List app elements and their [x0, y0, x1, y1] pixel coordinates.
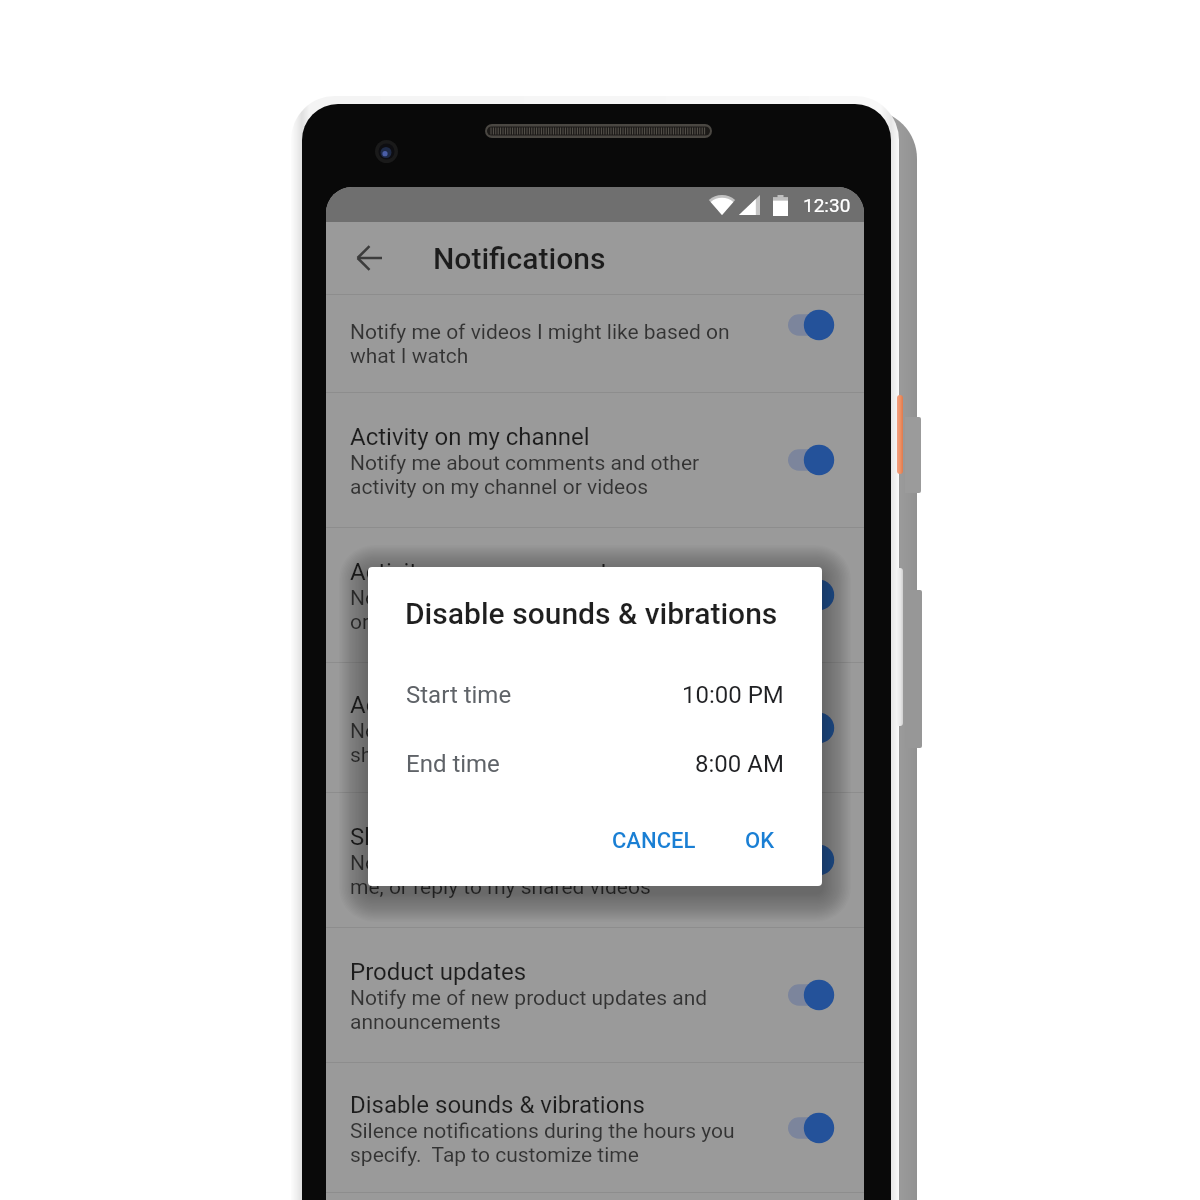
button[interactable]: Activity on my comments	[326, 528, 864, 662]
staticText: Activity on my comments	[350, 556, 621, 586]
staticText: Notify me about replies to my comments o…	[350, 586, 730, 634]
staticText: OK	[745, 828, 775, 854]
staticText: CANCEL	[612, 828, 696, 854]
button[interactable]: Notify me of videos I might like based o…	[326, 295, 864, 392]
button[interactable]: Toggle	[788, 575, 840, 615]
button[interactable]: Product updates	[326, 928, 864, 1062]
button[interactable]: Start time	[368, 670, 822, 720]
button[interactable]: OK	[735, 820, 785, 862]
staticText: Disable sounds & vibrations	[405, 596, 778, 631]
staticText: Notify me of videos I might like based o…	[350, 320, 730, 368]
staticText: Notifications	[433, 241, 606, 276]
staticText: Notify me when people share videos with …	[350, 851, 733, 899]
button[interactable]: Toggle	[788, 840, 840, 880]
button[interactable]: Toggle	[788, 1108, 840, 1148]
button[interactable]: CANCEL	[602, 820, 706, 862]
button[interactable]: Toggle	[788, 440, 840, 480]
button[interactable]: End time	[368, 739, 822, 789]
staticText: Shared videos	[350, 821, 501, 851]
staticText: Activity on my channel	[350, 421, 590, 451]
staticText: Start time	[406, 681, 512, 709]
staticText: End time	[406, 750, 500, 778]
staticText: 12:30	[803, 194, 851, 216]
button[interactable]: Activity on my community posts	[326, 663, 864, 792]
button[interactable]: Activity on my channel	[326, 393, 864, 527]
button[interactable]: Disable sounds & vibrations	[326, 1063, 864, 1192]
staticText: 10:00 PM	[682, 681, 784, 709]
button[interactable]: Shared videos	[326, 793, 864, 927]
staticText: Notify me about comments and other share…	[350, 719, 700, 767]
staticText: Silence notifications during the hours y…	[350, 1119, 735, 1167]
staticText: Notify me about comments and other activ…	[350, 451, 700, 499]
button[interactable]: Toggle	[788, 305, 840, 345]
button[interactable]: Toggle	[788, 708, 840, 748]
staticText: Product updates	[350, 956, 527, 986]
button[interactable]: Toggle	[788, 975, 840, 1015]
staticText: Notify me of new product updates and ann…	[350, 986, 708, 1034]
staticText: Activity on my community posts	[350, 689, 692, 719]
staticText: 8:00 AM	[695, 750, 784, 778]
staticText: Disable sounds & vibrations	[350, 1089, 646, 1119]
button[interactable]: Back	[343, 232, 395, 284]
